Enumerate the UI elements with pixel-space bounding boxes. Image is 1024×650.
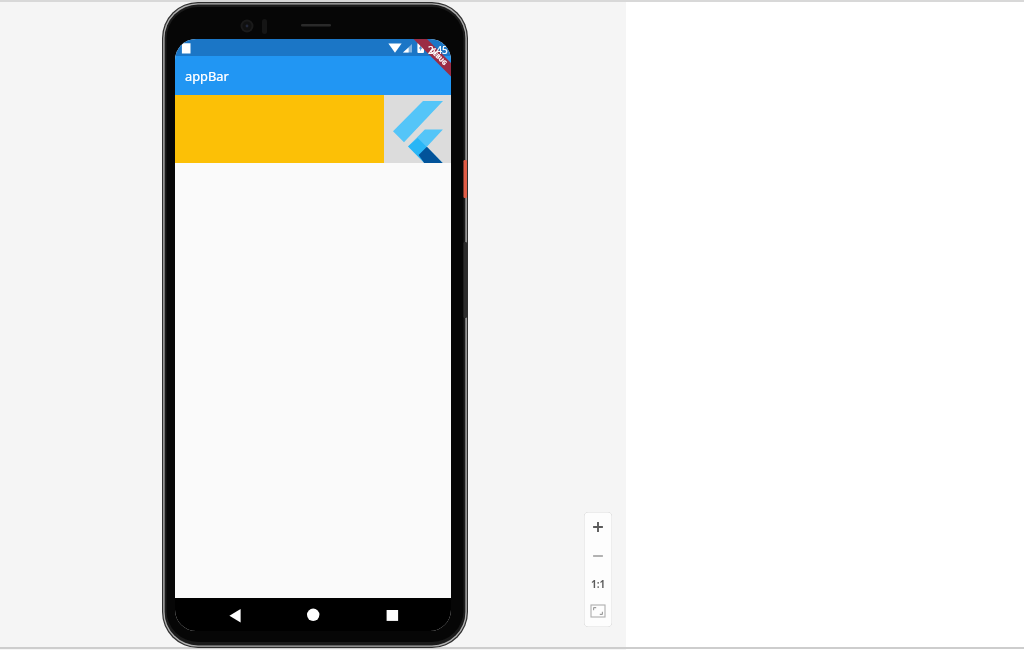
button[interactable]: Recent apps bbox=[375, 603, 399, 627]
button[interactable]: 1:1 bbox=[586, 572, 610, 596]
staticText: DEBUG bbox=[428, 47, 449, 67]
button[interactable]: Zoom in bbox=[586, 515, 610, 539]
button[interactable]: Fit to screen bbox=[588, 601, 608, 621]
button[interactable]: Zoom out bbox=[586, 544, 610, 568]
button[interactable]: Home bbox=[301, 603, 325, 627]
staticText: 1:1 bbox=[591, 577, 606, 591]
staticText: 2:45 bbox=[428, 43, 448, 57]
staticText: appBar bbox=[185, 67, 229, 84]
button[interactable]: Back bbox=[223, 603, 247, 627]
